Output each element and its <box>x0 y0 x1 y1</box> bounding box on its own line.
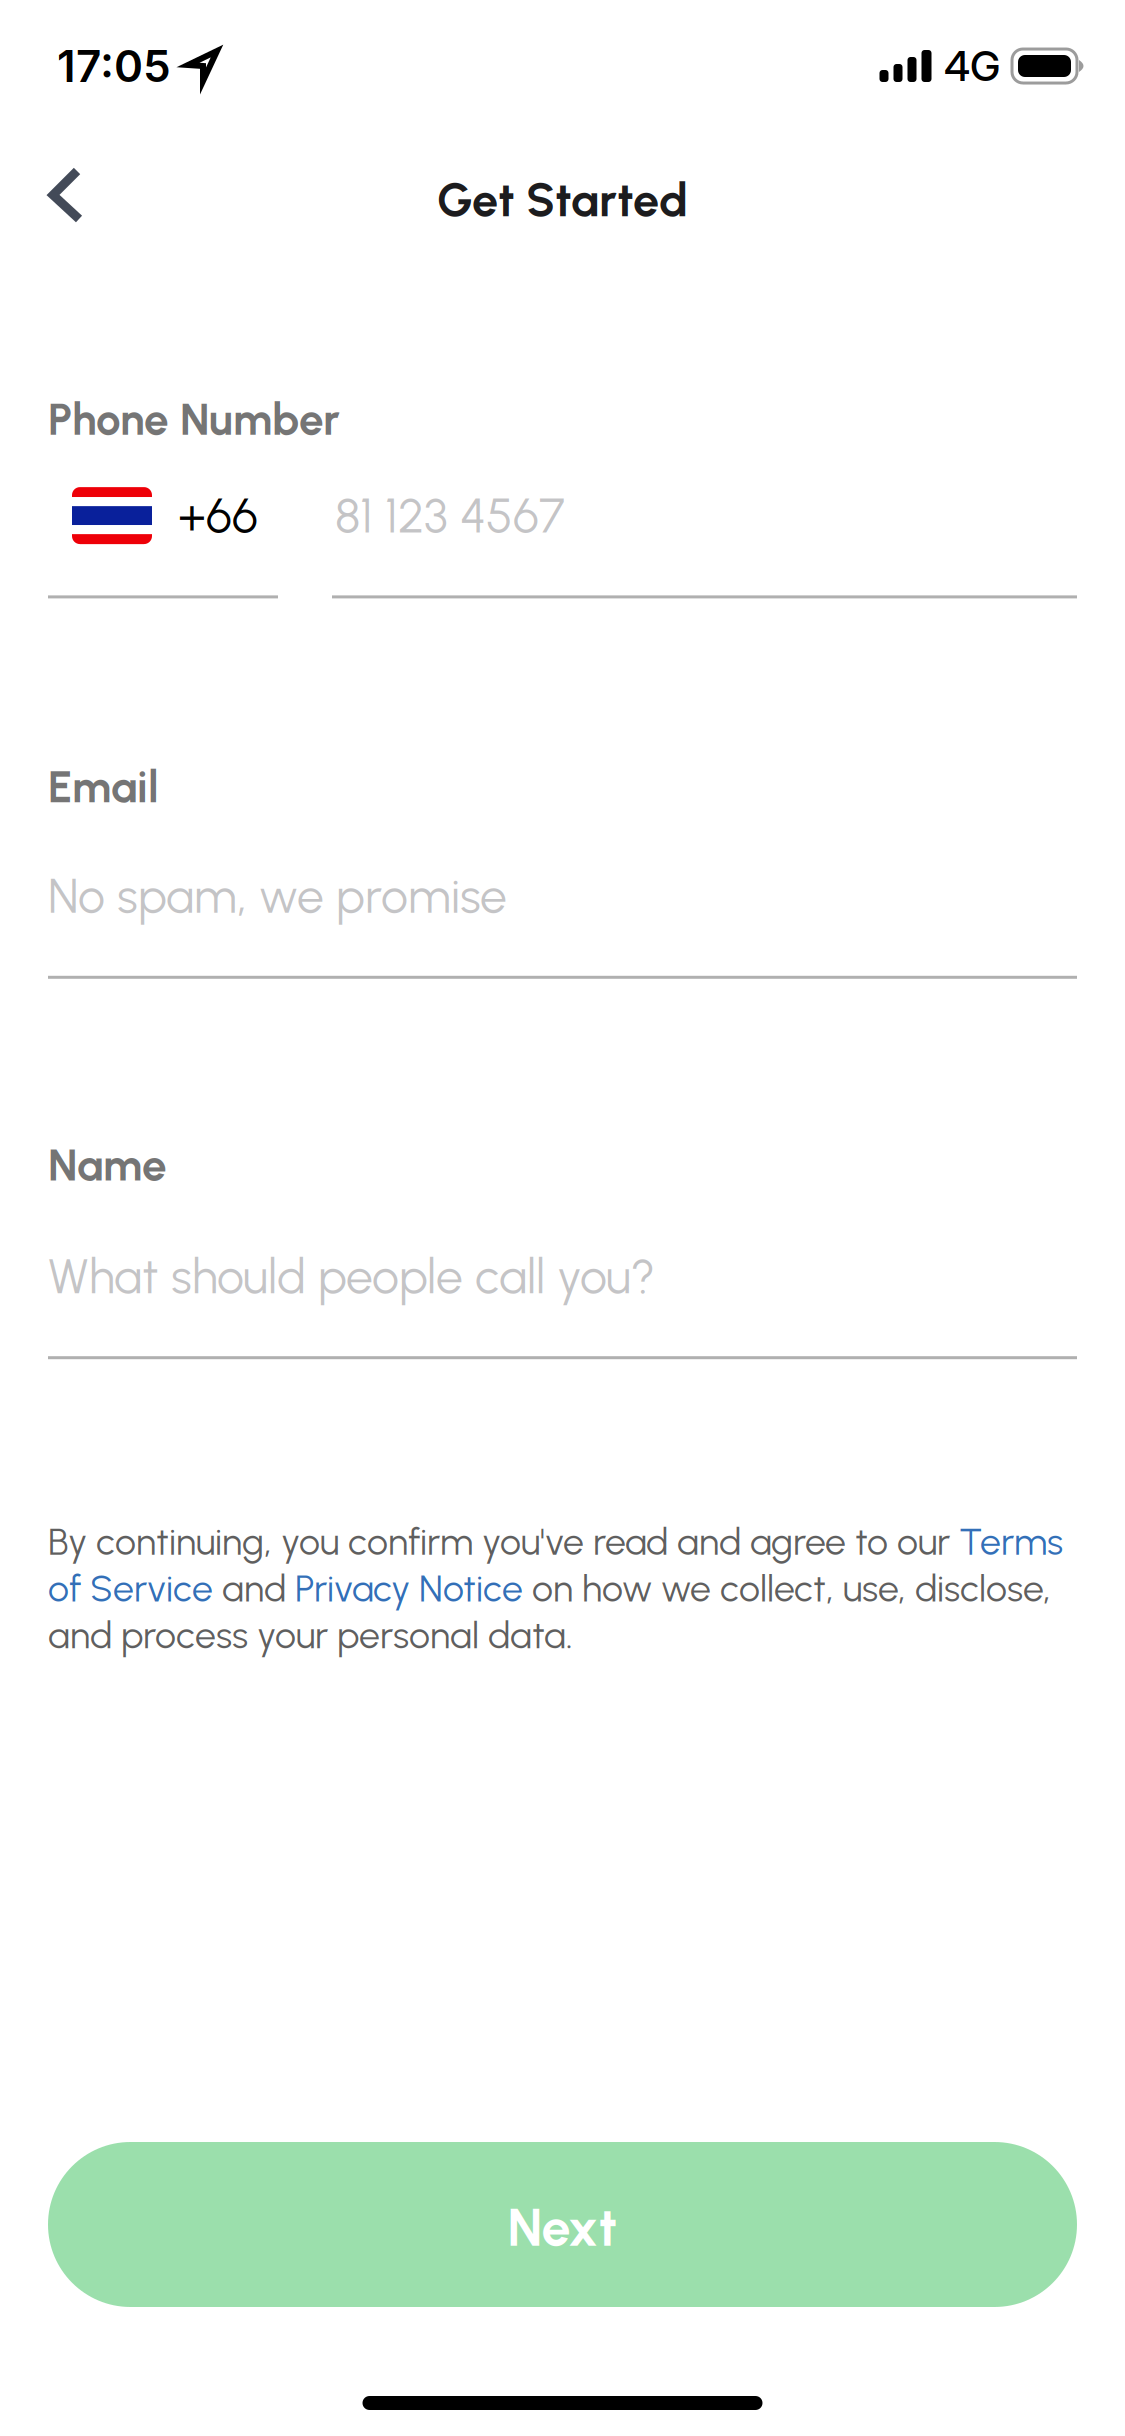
button[interactable]: Next <box>48 2142 1077 2307</box>
staticText: and <box>213 1566 295 1611</box>
button[interactable]: of Service <box>48 1566 213 1611</box>
staticText: Email <box>48 760 159 813</box>
button[interactable]: Back <box>0 131 124 249</box>
button[interactable]: Privacy Notice <box>295 1566 523 1611</box>
staticText: Next <box>507 2196 617 2259</box>
button[interactable]: Country code <box>48 487 278 598</box>
staticText: What should people call you? <box>48 1248 655 1305</box>
staticText: Privacy Notice <box>295 1566 523 1611</box>
staticText: and process your personal data. <box>48 1613 573 1658</box>
staticText: By continuing, you confirm you've read a… <box>48 1519 959 1564</box>
staticText: 17:05 <box>57 39 171 93</box>
staticText: +66 <box>178 487 258 544</box>
staticText: 81 123 4567 <box>335 487 565 544</box>
staticText: Name <box>48 1139 167 1192</box>
staticText: No spam, we promise <box>48 867 507 925</box>
staticText: of Service <box>48 1566 213 1611</box>
staticText: Terms <box>959 1519 1063 1564</box>
staticText: 4G <box>944 41 1000 91</box>
button[interactable]: Terms <box>959 1519 1063 1564</box>
staticText: Get Started <box>437 172 688 228</box>
staticText: Phone Number <box>48 393 340 446</box>
staticText: on how we collect, use, disclose, <box>523 1566 1051 1611</box>
